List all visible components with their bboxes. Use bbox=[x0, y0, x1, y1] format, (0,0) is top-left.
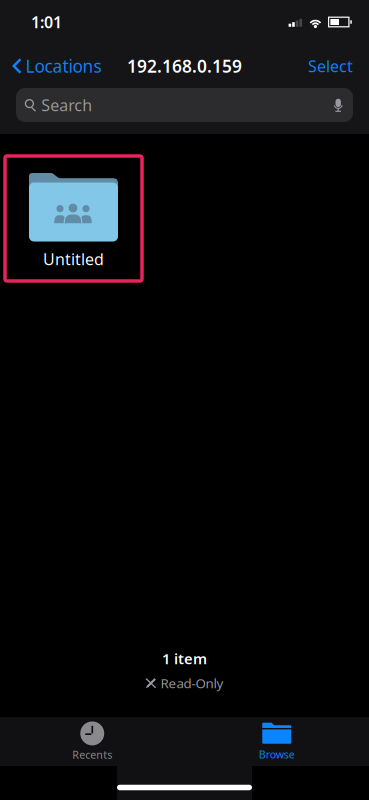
staticText: 192.168.0.159 bbox=[127, 54, 242, 77]
staticText: Read-Only bbox=[160, 674, 223, 692]
staticText: Select bbox=[308, 55, 353, 77]
staticText: 1 item bbox=[162, 649, 207, 668]
staticText: Search bbox=[41, 94, 92, 116]
button[interactable]: Browse bbox=[184, 717, 369, 766]
staticText: Recents bbox=[72, 747, 112, 762]
staticText: 1:01 bbox=[31, 11, 62, 33]
button[interactable]: Locations bbox=[0, 48, 111, 84]
button[interactable]: Recents bbox=[0, 717, 184, 766]
staticText: Browse bbox=[259, 747, 295, 761]
button[interactable]: Untitled bbox=[5, 156, 142, 281]
staticText: Untitled bbox=[43, 248, 104, 270]
staticText: Locations bbox=[25, 54, 101, 77]
button[interactable]: Select bbox=[298, 48, 369, 84]
button[interactable]: Search bbox=[16, 88, 353, 122]
